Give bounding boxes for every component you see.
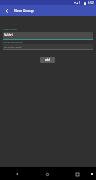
staticText: add: [45, 58, 50, 62]
button[interactable]: Sukhoi: [3, 32, 93, 40]
button[interactable]: for:Drink coffee: [3, 44, 93, 50]
button[interactable]: Back: [11, 168, 23, 180]
staticText: for:Drink coffee: [4, 45, 22, 48]
staticText: 1: [79, 1, 81, 5]
staticText: New Group: [14, 8, 34, 13]
button[interactable]: Switch keyboard: [89, 168, 94, 180]
staticText: Sukhoi: [4, 33, 13, 37]
button[interactable]: Back: [0, 5, 13, 16]
staticText: Group Description: [3, 41, 23, 44]
staticText: 1:52: [88, 1, 94, 5]
button[interactable]: Home: [41, 168, 53, 180]
button[interactable]: Recent apps: [71, 168, 83, 180]
button[interactable]: add: [40, 57, 55, 63]
staticText: Name Group: [3, 28, 17, 31]
